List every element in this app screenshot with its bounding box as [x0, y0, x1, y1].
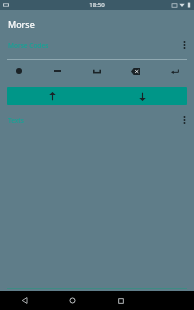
button[interactable]: More options: [177, 38, 191, 52]
staticText: 18:50: [89, 1, 105, 9]
button[interactable]: More options: [177, 113, 191, 127]
button[interactable]: Backspace: [116, 60, 155, 82]
button[interactable]: Decode down: [97, 87, 187, 105]
button[interactable]: Encode up: [7, 87, 97, 105]
staticText: Morse Codes: [8, 41, 49, 50]
button[interactable]: Back: [0, 291, 48, 310]
button[interactable]: Space: [77, 60, 116, 82]
staticText: Morse: [8, 18, 35, 30]
button[interactable]: Enter: [155, 60, 194, 82]
staticText: Texts: [8, 116, 24, 125]
button[interactable]: Dash: [38, 60, 77, 82]
button[interactable]: Dot: [0, 60, 38, 82]
button[interactable]: Recent apps: [96, 291, 145, 310]
button[interactable]: Home: [48, 291, 96, 310]
